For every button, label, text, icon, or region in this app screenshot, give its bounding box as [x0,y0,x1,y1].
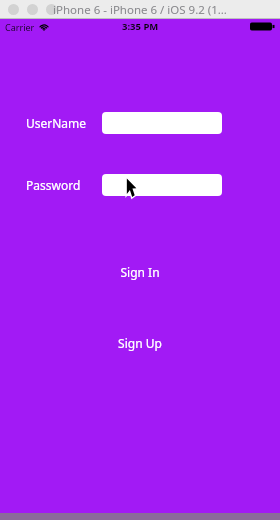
button[interactable]: Sign Up [0,333,280,353]
staticText: Carrier [5,21,35,33]
staticText: iPhone 6 - iPhone 6 / iOS 9.2 (1… [53,2,227,18]
button[interactable]: Password text field [102,174,222,196]
staticText: Sign In [120,264,160,280]
button[interactable]: Sign In [0,262,280,282]
staticText: Sign Up [118,335,162,351]
staticText: 3:35 PM [122,20,159,33]
button[interactable]: Minimize [27,4,38,15]
button[interactable]: Close [8,4,19,15]
staticText: UserName [26,115,87,131]
button[interactable]: UserName text field [102,112,222,134]
button[interactable]: Zoom [46,4,57,15]
staticText: Password [26,177,81,193]
